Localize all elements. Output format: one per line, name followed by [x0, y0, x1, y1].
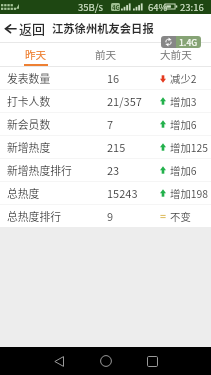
button[interactable]: Recent apps — [138, 347, 166, 375]
button[interactable]: 新会员数 — [0, 113, 211, 135]
staticText: 新增热度排行 — [7, 162, 72, 178]
staticText: 总热度 — [7, 185, 40, 201]
staticText: 4G — [112, 3, 120, 11]
staticText: 江苏徐州机友会日报 — [52, 20, 154, 36]
staticText: 23:16 — [180, 0, 204, 14]
staticText: 15243 — [107, 185, 138, 201]
staticText: 增加198 — [170, 186, 209, 201]
staticText: 新增热度 — [7, 139, 51, 155]
staticText: 16 — [107, 70, 120, 86]
button[interactable]: 新增热度 — [0, 136, 211, 158]
staticText: 7 — [107, 116, 114, 132]
staticText: 不变 — [170, 209, 191, 224]
button[interactable]: 总热度 — [0, 182, 211, 204]
staticText: 64% — [148, 0, 168, 14]
button[interactable]: 总热度排行 — [0, 205, 211, 227]
button[interactable]: 昨天 — [0, 43, 71, 66]
staticText: 21/357 — [107, 93, 142, 109]
button[interactable]: Back — [45, 347, 73, 375]
staticText: 减少2 — [170, 71, 197, 86]
staticText: 前天 — [95, 47, 117, 62]
staticText: 增加6 — [170, 163, 197, 178]
staticText: 新会员数 — [7, 116, 51, 132]
staticText: 发表数量 — [7, 70, 51, 86]
button[interactable]: 发表数量 — [0, 67, 211, 89]
staticText: 大前天 — [160, 47, 192, 62]
staticText: 增加6 — [170, 117, 197, 132]
staticText: 23 — [107, 162, 120, 178]
staticText: 打卡人数 — [7, 93, 51, 109]
button[interactable]: Home — [92, 347, 120, 375]
staticText: 215 — [107, 139, 126, 155]
staticText: 增加125 — [170, 140, 209, 155]
staticText: 9 — [107, 208, 114, 224]
staticText: 1.4G — [179, 36, 198, 48]
staticText: 昨天 — [25, 47, 47, 62]
button[interactable]: Network speed — [161, 36, 201, 48]
staticText: 返回 — [19, 19, 46, 38]
staticText: 总热度排行 — [7, 208, 61, 224]
button[interactable]: 新增热度排行 — [0, 159, 211, 181]
button[interactable]: 大前天 — [141, 43, 211, 66]
button[interactable]: 打卡人数 — [0, 90, 211, 112]
button[interactable]: 前天 — [71, 43, 141, 66]
button[interactable]: 返回 — [0, 14, 211, 42]
staticText: 35B/s — [78, 0, 103, 14]
staticText: 增加3 — [170, 94, 197, 109]
